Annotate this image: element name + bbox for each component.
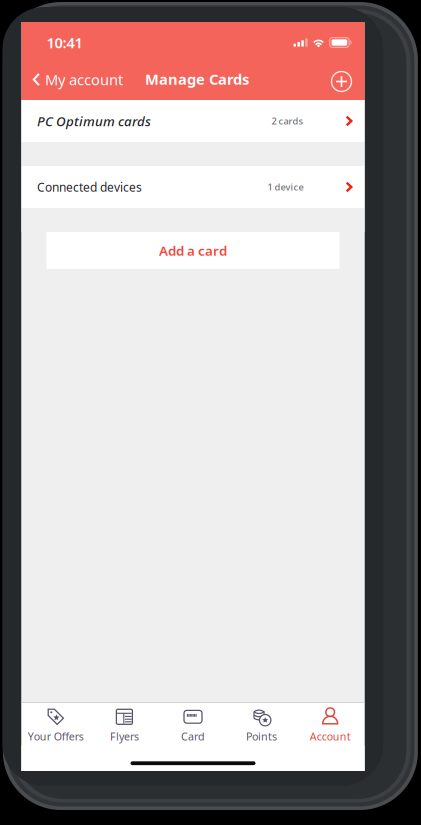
button[interactable]: My account: [32, 66, 123, 97]
staticText: 1 device: [267, 181, 303, 193]
staticText: 10:41: [46, 33, 82, 52]
button[interactable]: Card: [159, 703, 227, 745]
staticText: 2 cards: [271, 115, 303, 127]
button[interactable]: Connected devices: [21, 166, 364, 208]
staticText: PC Optimum cards: [37, 112, 151, 130]
staticText: Points: [246, 729, 277, 743]
staticText: Card: [181, 729, 205, 743]
staticText: My account: [45, 70, 123, 89]
staticText: Flyers: [110, 729, 139, 743]
staticText: Account: [310, 729, 351, 743]
button[interactable]: Flyers: [90, 703, 159, 745]
button[interactable]: Add a card: [331, 71, 351, 91]
button[interactable]: PC Optimum cards: [21, 100, 364, 142]
staticText: Your Offers: [28, 729, 84, 743]
staticText: Connected devices: [37, 179, 142, 195]
button[interactable]: Add a card: [46, 232, 339, 269]
button[interactable]: Account: [296, 703, 364, 745]
staticText: Manage Cards: [145, 69, 249, 89]
staticText: Add a card: [159, 242, 227, 259]
button[interactable]: Points: [227, 703, 296, 745]
button[interactable]: Your Offers: [21, 703, 90, 745]
